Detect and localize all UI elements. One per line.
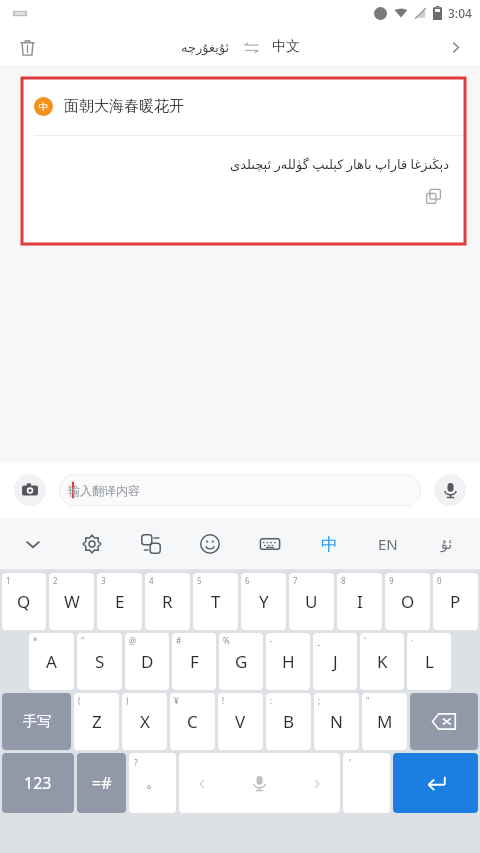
staticText: F bbox=[190, 650, 199, 673]
staticText: U bbox=[305, 590, 318, 613]
button[interactable]: Enter bbox=[393, 753, 478, 813]
button[interactable]: Y bbox=[241, 573, 286, 630]
button[interactable]: Q bbox=[2, 573, 46, 630]
button[interactable]: Backspace bbox=[410, 693, 478, 750]
staticText: 输入翻译内容 bbox=[68, 483, 140, 498]
button[interactable]: ? bbox=[129, 753, 176, 813]
button[interactable]: Copy bbox=[421, 184, 445, 208]
button[interactable]: Z bbox=[74, 693, 119, 750]
staticText: K bbox=[377, 650, 388, 673]
staticText: % bbox=[223, 635, 230, 646]
button[interactable]: 中 bbox=[312, 527, 346, 561]
button[interactable]: W bbox=[49, 573, 94, 630]
button[interactable]: V bbox=[218, 693, 263, 750]
button[interactable]: U bbox=[289, 573, 334, 630]
staticText: @ bbox=[129, 635, 137, 646]
button[interactable]: Settings bbox=[75, 527, 109, 561]
button[interactable]: D bbox=[125, 633, 169, 690]
staticText: ' bbox=[349, 756, 352, 768]
staticText: " bbox=[81, 635, 85, 646]
staticText: ( bbox=[78, 695, 81, 706]
button[interactable]: C bbox=[170, 693, 215, 750]
staticText: 6 bbox=[245, 575, 250, 586]
staticText: N bbox=[330, 710, 343, 733]
staticText: · bbox=[411, 635, 414, 646]
staticText: 4 bbox=[149, 575, 154, 586]
button[interactable]: M bbox=[362, 693, 407, 750]
staticText: V bbox=[235, 710, 246, 733]
staticText: X bbox=[140, 710, 150, 733]
button[interactable]: N bbox=[314, 693, 359, 750]
staticText: Z bbox=[92, 710, 102, 733]
button[interactable]: P bbox=[433, 573, 478, 630]
staticText: G bbox=[235, 650, 248, 673]
staticText: 3 bbox=[101, 575, 106, 586]
button[interactable]: Keyboard layout bbox=[253, 527, 287, 561]
button[interactable]: EN bbox=[371, 527, 405, 561]
button[interactable]: G bbox=[219, 633, 263, 690]
button[interactable]: I bbox=[337, 573, 382, 630]
button[interactable]: K bbox=[360, 633, 404, 690]
button[interactable]: E bbox=[97, 573, 142, 630]
button[interactable]: 手写 bbox=[2, 693, 71, 750]
staticText: Y bbox=[259, 590, 269, 613]
button[interactable]: H bbox=[266, 633, 310, 690]
button[interactable]: J bbox=[313, 633, 357, 690]
button[interactable]: 中文 bbox=[266, 34, 306, 60]
button[interactable]: Space bbox=[179, 753, 340, 813]
button[interactable]: X bbox=[122, 693, 167, 750]
button[interactable]: B bbox=[266, 693, 311, 750]
button[interactable]: T bbox=[193, 573, 238, 630]
button[interactable]: 中 bbox=[22, 78, 465, 244]
staticText: L bbox=[425, 650, 434, 673]
staticText: 9 bbox=[389, 575, 394, 586]
button[interactable]: S bbox=[77, 633, 122, 690]
button[interactable]: ئۇ bbox=[430, 527, 464, 561]
staticText: 7 bbox=[293, 575, 298, 586]
staticText: ; bbox=[318, 695, 321, 706]
staticText: ! bbox=[222, 695, 225, 706]
button[interactable]: L bbox=[407, 633, 451, 690]
staticText: 手写 bbox=[23, 713, 51, 731]
staticText: ) bbox=[126, 695, 129, 706]
button[interactable]: A bbox=[29, 633, 74, 690]
staticText: ¥ bbox=[174, 695, 179, 706]
staticText: R bbox=[162, 590, 173, 613]
button[interactable]: Swap languages bbox=[236, 32, 266, 62]
button[interactable]: =# bbox=[77, 753, 126, 813]
staticText: 8 bbox=[341, 575, 346, 586]
button[interactable]: R bbox=[145, 573, 190, 630]
staticText: - bbox=[270, 635, 273, 646]
button[interactable]: F bbox=[172, 633, 216, 690]
staticText: _ bbox=[317, 635, 321, 646]
button[interactable]: 输入翻译内容 bbox=[59, 474, 421, 506]
staticText: 2 bbox=[53, 575, 58, 586]
button[interactable]: Voice input bbox=[434, 474, 466, 506]
staticText: 。 bbox=[146, 774, 160, 792]
staticText: دېڭىزغا قاراپ باھار كېلىپ گۈللەر ئېچىلدى bbox=[22, 155, 449, 173]
staticText: W bbox=[64, 590, 80, 613]
staticText: ئۇ bbox=[441, 536, 453, 552]
button[interactable]: Emoji bbox=[193, 527, 227, 561]
staticText: I bbox=[357, 590, 363, 613]
staticText: 中 bbox=[39, 101, 48, 112]
button[interactable]: Translate bbox=[134, 527, 168, 561]
staticText: EN bbox=[378, 534, 398, 554]
staticText: T bbox=[211, 590, 221, 613]
button[interactable]: Collapse keyboard bbox=[16, 527, 50, 561]
staticText: 中文 bbox=[272, 38, 300, 56]
staticText: ئۇيغۇرچە bbox=[181, 40, 230, 55]
staticText: ' bbox=[364, 635, 366, 646]
staticText: J bbox=[333, 650, 338, 673]
staticText: H bbox=[282, 650, 295, 673]
button[interactable]: 123 bbox=[2, 753, 74, 813]
button[interactable]: ئۇيغۇرچە bbox=[175, 36, 236, 59]
button[interactable]: O bbox=[385, 573, 430, 630]
button[interactable]: More bbox=[438, 30, 472, 64]
staticText: 面朝大海春暖花开 bbox=[64, 97, 184, 116]
staticText: D bbox=[141, 650, 154, 673]
button[interactable]: Clear bbox=[10, 30, 44, 64]
staticText: S bbox=[95, 650, 105, 673]
button[interactable]: Camera bbox=[14, 474, 46, 506]
